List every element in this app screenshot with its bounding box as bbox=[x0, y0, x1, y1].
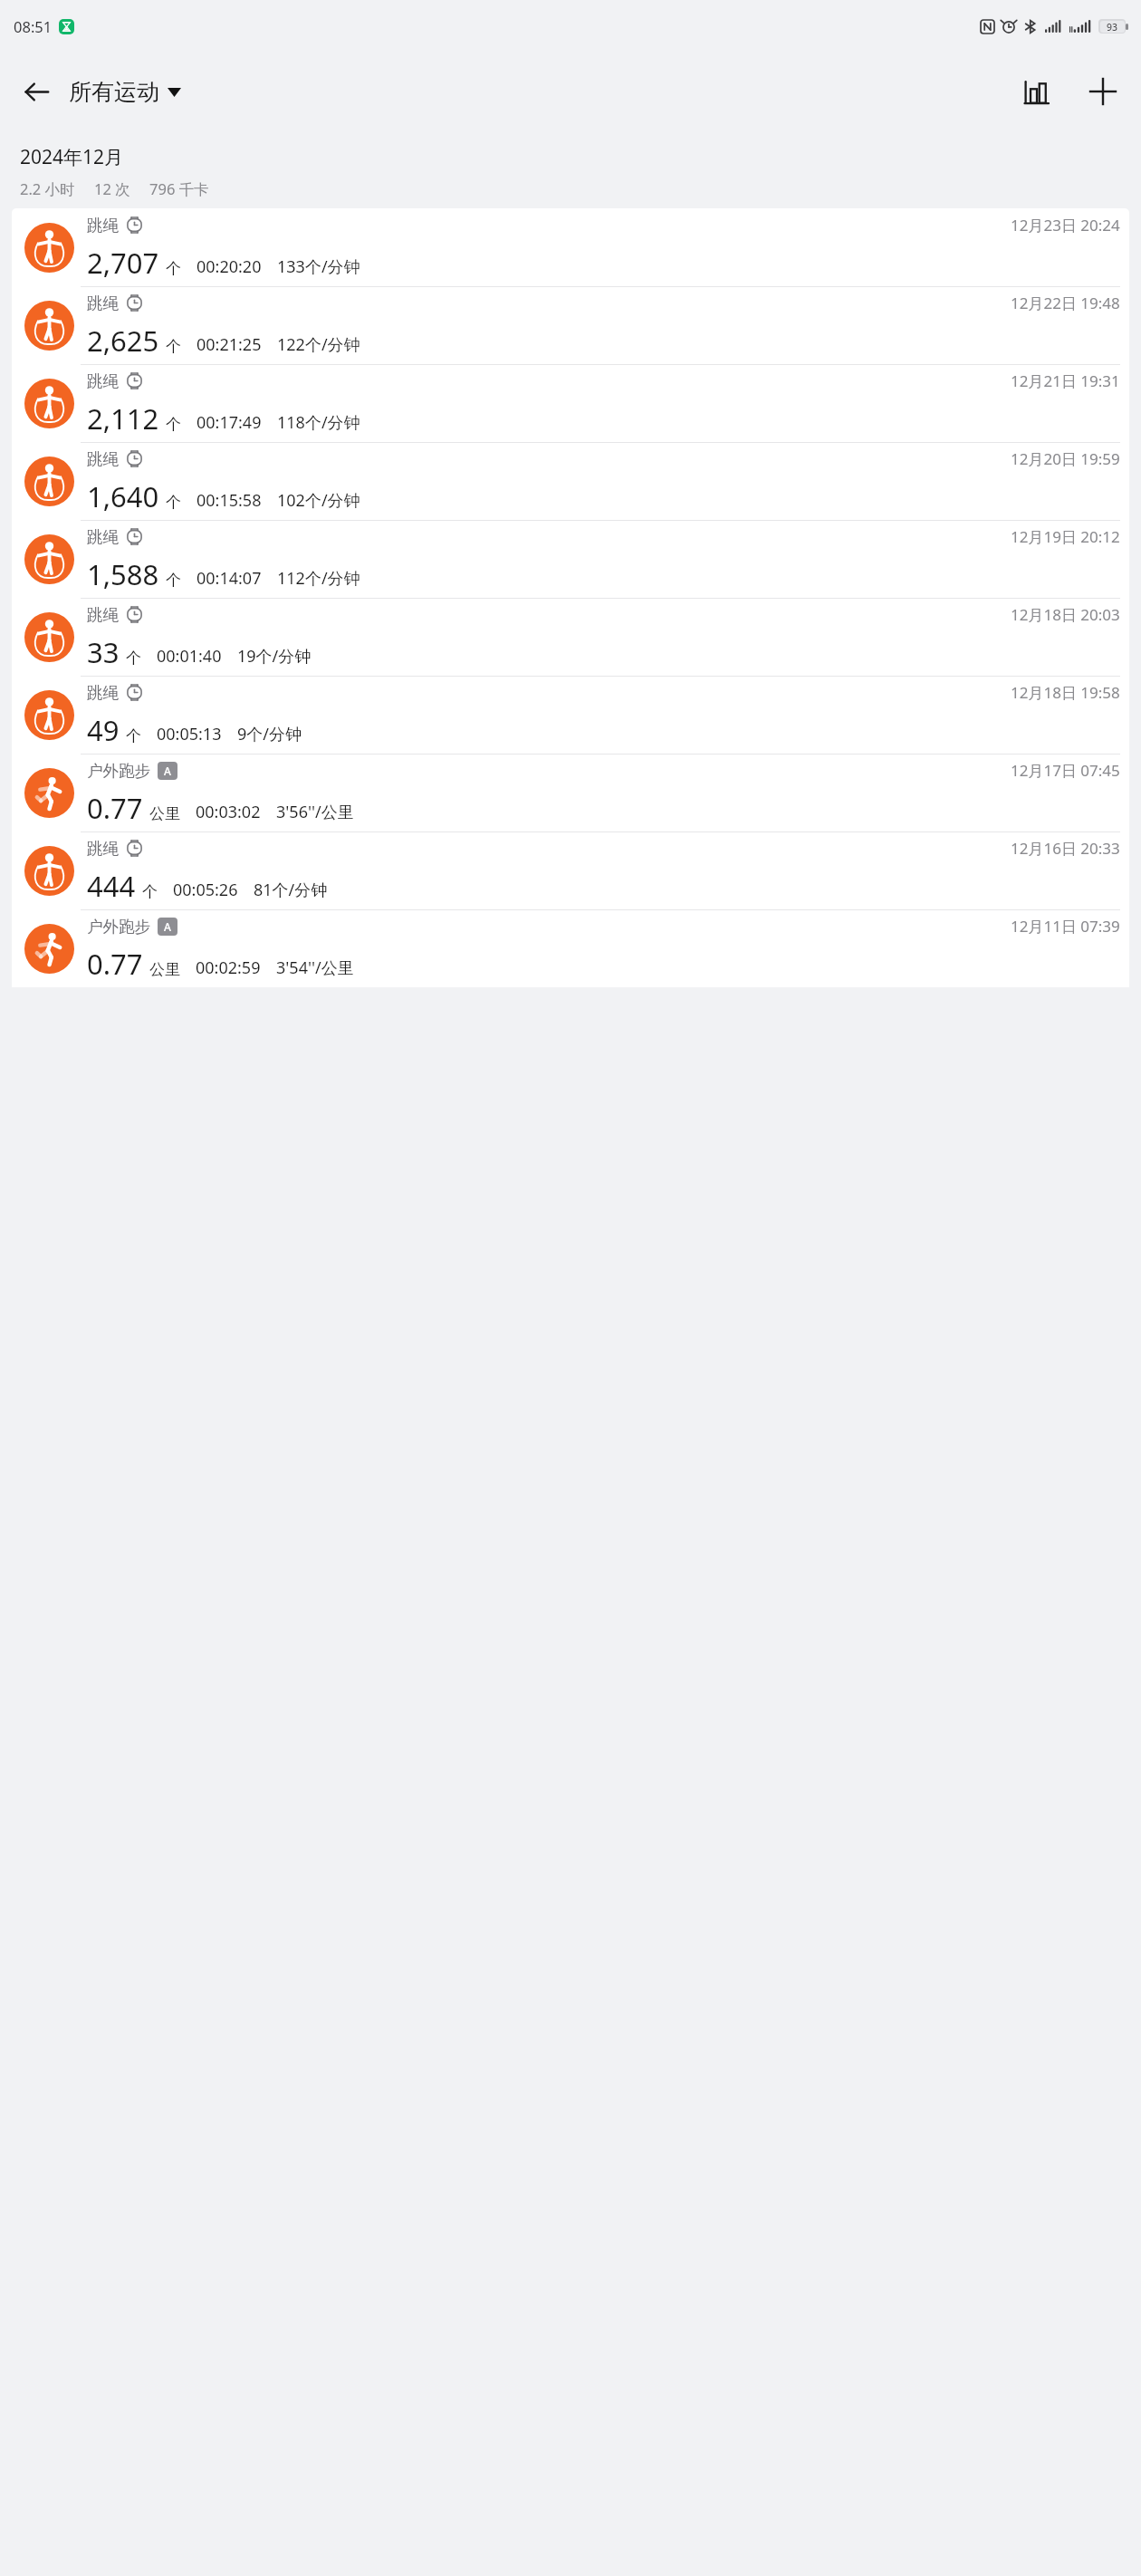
staticText: 2,707 bbox=[87, 244, 159, 282]
staticText: 12月22日 19:48 bbox=[1011, 293, 1120, 313]
staticText: 1,640 bbox=[87, 477, 159, 515]
button[interactable]: 跳绳 bbox=[12, 442, 1129, 520]
staticText: 12月19日 20:12 bbox=[1011, 526, 1120, 547]
staticText: 2,112 bbox=[87, 399, 159, 437]
staticText: 444 bbox=[87, 867, 136, 905]
staticText: 所有运动 bbox=[69, 78, 159, 106]
button[interactable]: 跳绳 bbox=[12, 831, 1129, 909]
staticText: 12月21日 19:31 bbox=[1011, 370, 1120, 391]
staticText: 2024年12月 bbox=[20, 144, 124, 170]
staticText: 00:01:40 bbox=[157, 645, 222, 668]
button[interactable]: Add bbox=[1079, 68, 1127, 115]
staticText: 2.2 小时 bbox=[20, 178, 75, 199]
staticText: 00:05:13 bbox=[157, 723, 222, 745]
staticText: 12月17日 07:45 bbox=[1011, 760, 1120, 781]
staticText: 19个/分钟 bbox=[237, 645, 312, 668]
button[interactable]: 跳绳 bbox=[12, 520, 1129, 598]
button[interactable]: 跳绳 bbox=[12, 598, 1129, 676]
staticText: 0.77 bbox=[87, 789, 143, 827]
staticText: A bbox=[164, 764, 171, 778]
button[interactable]: Statistics bbox=[1012, 68, 1059, 115]
staticText: 跳绳 bbox=[87, 293, 119, 313]
staticText: 个 bbox=[166, 571, 181, 590]
staticText: 49 bbox=[87, 711, 120, 749]
staticText: 12月18日 20:03 bbox=[1011, 604, 1120, 625]
button[interactable]: 所有运动 bbox=[69, 78, 181, 106]
staticText: 0.77 bbox=[87, 945, 143, 983]
staticText: 3'56''/公里 bbox=[276, 801, 354, 823]
button[interactable]: 跳绳 bbox=[12, 676, 1129, 754]
button[interactable]: 户外跑步 bbox=[12, 754, 1129, 831]
staticText: 跳绳 bbox=[87, 683, 119, 703]
button[interactable]: 户外跑步 bbox=[12, 909, 1129, 987]
staticText: 跳绳 bbox=[87, 527, 119, 547]
staticText: 00:03:02 bbox=[196, 801, 261, 823]
staticText: 00:14:07 bbox=[197, 567, 262, 590]
staticText: 00:21:25 bbox=[197, 333, 262, 356]
staticText: 00:15:58 bbox=[197, 489, 262, 512]
button[interactable]: 跳绳 bbox=[12, 364, 1129, 442]
staticText: 796 千卡 bbox=[149, 178, 209, 199]
staticText: 12月16日 20:33 bbox=[1011, 838, 1120, 859]
staticText: 个 bbox=[166, 415, 181, 434]
staticText: 公里 bbox=[149, 804, 180, 823]
staticText: 跳绳 bbox=[87, 839, 119, 859]
staticText: 跳绳 bbox=[87, 605, 119, 625]
staticText: 12月18日 19:58 bbox=[1011, 682, 1120, 703]
staticText: 93 bbox=[1107, 21, 1118, 33]
staticText: 1,588 bbox=[87, 555, 159, 593]
staticText: 00:20:20 bbox=[197, 255, 262, 278]
staticText: 122个/分钟 bbox=[277, 333, 360, 356]
staticText: 9个/分钟 bbox=[237, 723, 302, 745]
staticText: 112个/分钟 bbox=[277, 567, 360, 590]
staticText: 12月20日 19:59 bbox=[1011, 448, 1120, 469]
staticText: 个 bbox=[142, 882, 158, 901]
staticText: 个 bbox=[166, 259, 181, 278]
staticText: 跳绳 bbox=[87, 216, 119, 235]
staticText: 33 bbox=[87, 633, 120, 671]
staticText: 102个/分钟 bbox=[277, 489, 360, 512]
button[interactable]: 跳绳 bbox=[12, 286, 1129, 364]
staticText: 00:02:59 bbox=[196, 956, 261, 979]
staticText: 81个/分钟 bbox=[254, 879, 328, 901]
staticText: 个 bbox=[126, 726, 141, 745]
staticText: 公里 bbox=[149, 960, 180, 979]
staticText: 个 bbox=[166, 337, 181, 356]
staticText: 个 bbox=[166, 493, 181, 512]
staticText: 00:17:49 bbox=[197, 411, 262, 434]
staticText: 跳绳 bbox=[87, 371, 119, 391]
staticText: 2,625 bbox=[87, 322, 159, 360]
staticText: 户外跑步 bbox=[87, 917, 150, 937]
staticText: 00:05:26 bbox=[173, 879, 238, 901]
staticText: 08:51 bbox=[14, 16, 53, 36]
staticText: 12月23日 20:24 bbox=[1011, 215, 1120, 235]
staticText: 12月11日 07:39 bbox=[1011, 916, 1120, 937]
button[interactable]: Back bbox=[13, 68, 60, 115]
staticText: A bbox=[164, 919, 171, 934]
staticText: 133个/分钟 bbox=[277, 255, 360, 278]
button[interactable]: 跳绳 bbox=[12, 208, 1129, 286]
staticText: 个 bbox=[126, 649, 141, 668]
staticText: 户外跑步 bbox=[87, 761, 150, 781]
staticText: 12 次 bbox=[94, 178, 130, 199]
staticText: 118个/分钟 bbox=[277, 411, 360, 434]
staticText: 跳绳 bbox=[87, 449, 119, 469]
staticText: 3'54''/公里 bbox=[276, 956, 354, 979]
